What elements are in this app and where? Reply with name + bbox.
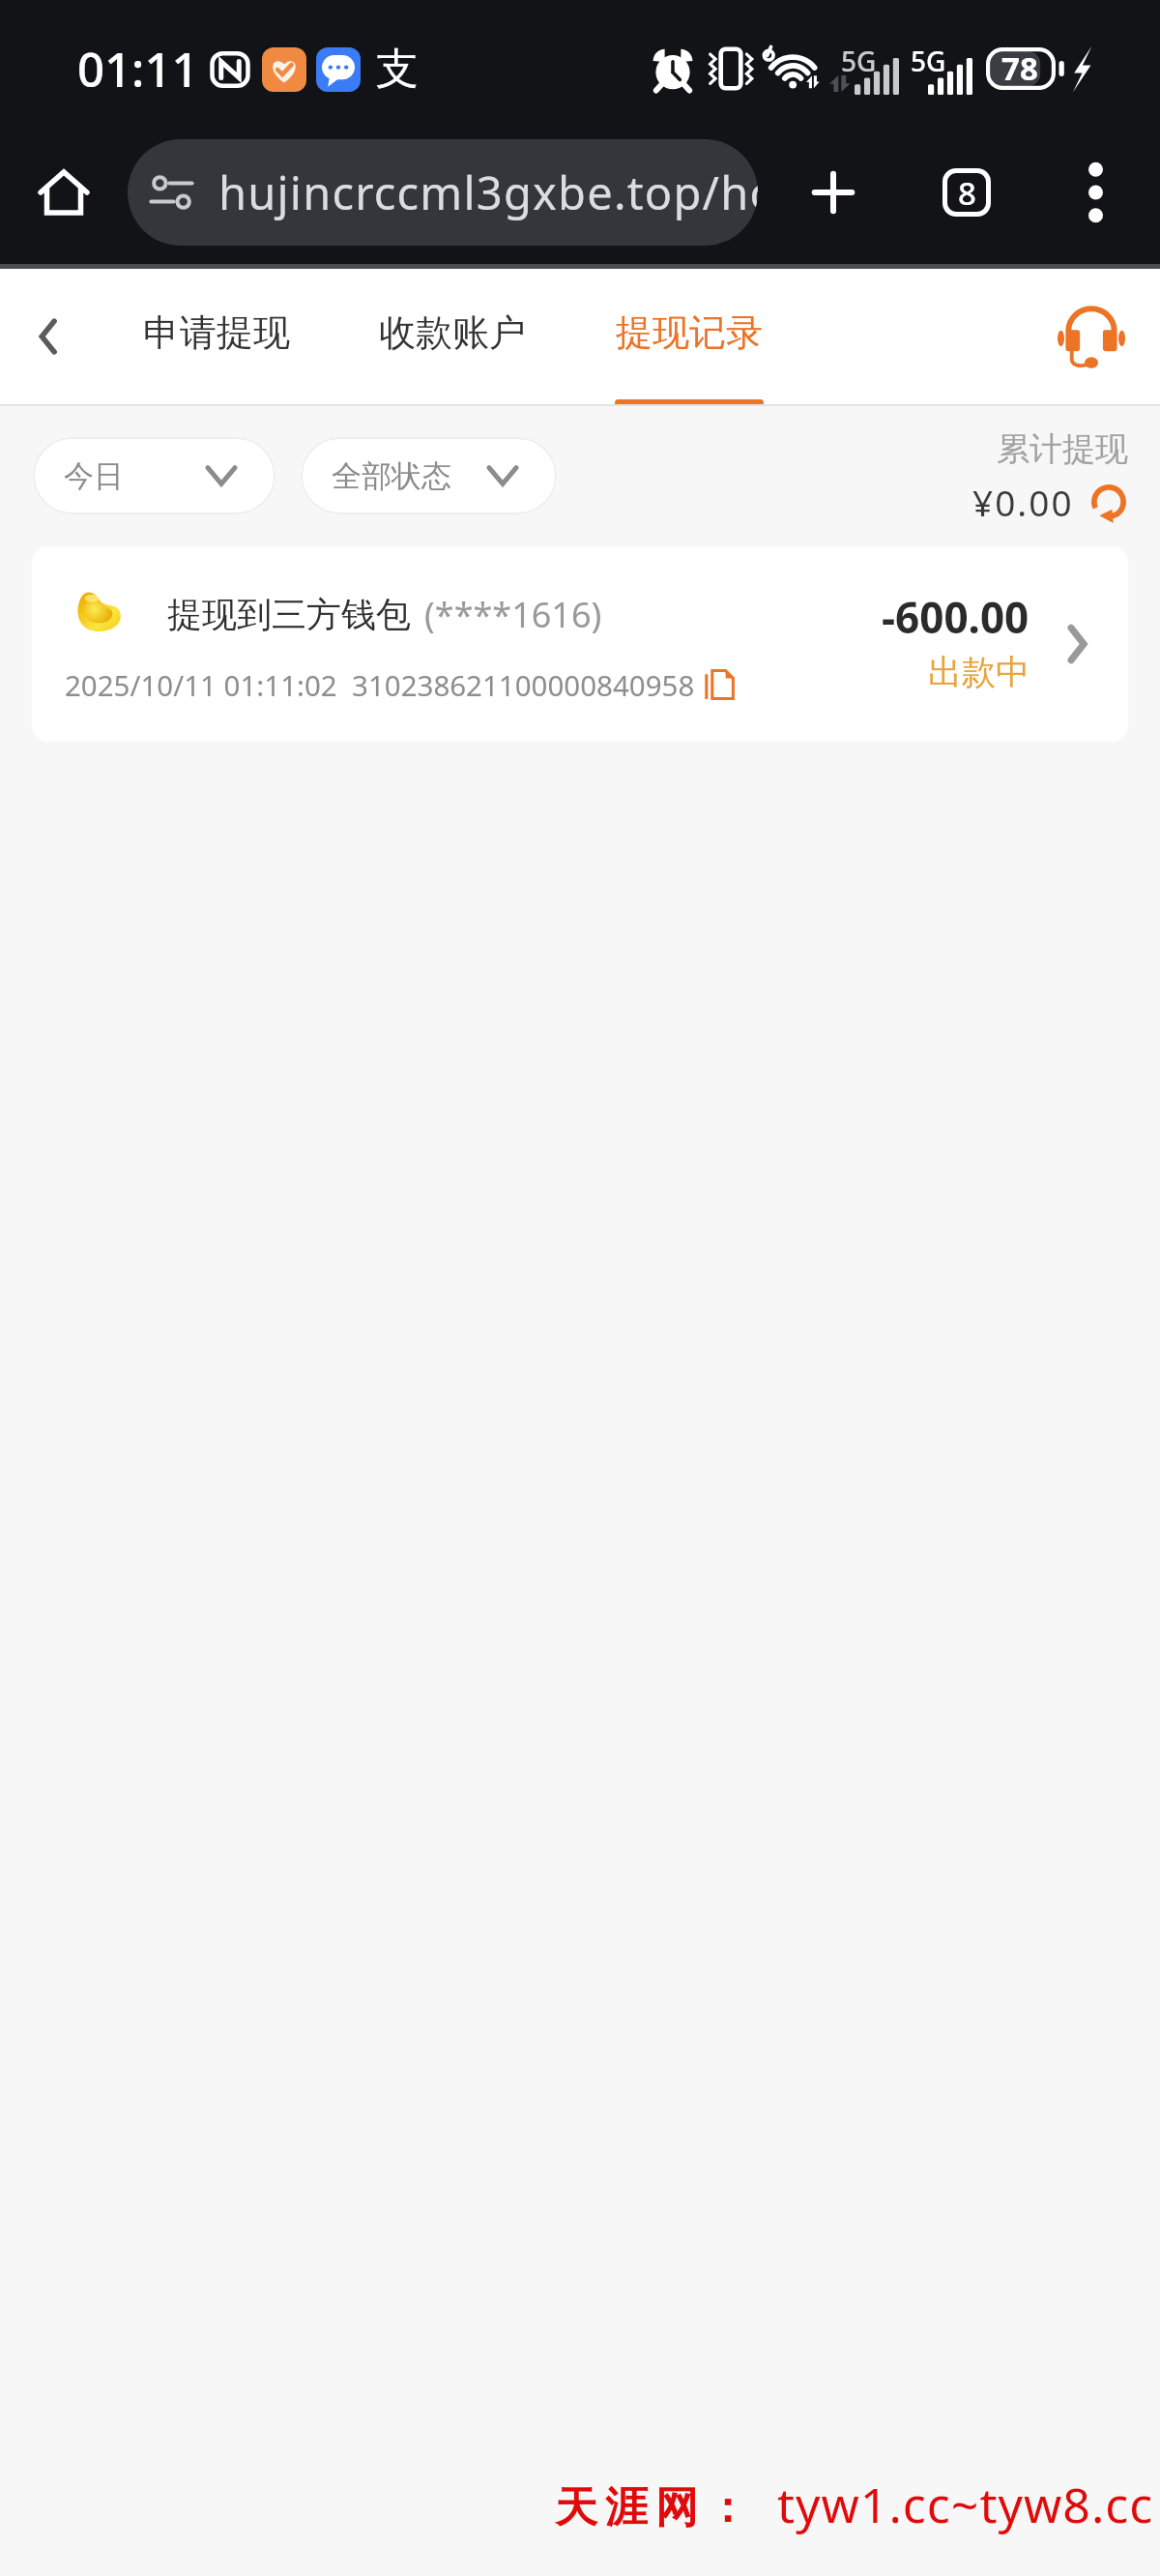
staticText: (****1616)	[424, 591, 602, 638]
staticText: -600.00	[882, 588, 1029, 646]
button[interactable]: Back	[10, 298, 87, 375]
button[interactable]: Copy order number	[703, 668, 736, 701]
staticText: 累计提现	[997, 428, 1128, 470]
button[interactable]: 全部状态	[301, 437, 557, 514]
button[interactable]: Refresh	[1089, 483, 1128, 521]
button[interactable]: More options	[1053, 150, 1138, 235]
button[interactable]: 收款账户	[334, 269, 570, 404]
staticText: hujincrccml3gxbe.top/home	[218, 161, 758, 223]
button[interactable]: 提现记录	[570, 269, 808, 404]
staticText: tyw1.cc~tyw8.cc	[777, 2472, 1154, 2537]
staticText: 2025/10/11 01:11:02 31023862110000084095…	[65, 665, 695, 704]
staticText: 收款账户	[379, 309, 526, 356]
staticText: 5G	[911, 43, 946, 79]
button[interactable]: 申请提现	[99, 269, 334, 404]
staticText: 申请提现	[143, 309, 290, 356]
staticText: 提现到三方钱包	[167, 593, 411, 636]
staticText: 今日	[64, 457, 124, 495]
staticText: 全部状态	[332, 457, 451, 495]
button[interactable]: 提现到三方钱包	[32, 546, 1128, 742]
staticText: 支	[376, 43, 419, 96]
button[interactable]: Home	[27, 156, 101, 229]
button[interactable]: Customer service	[1051, 296, 1132, 377]
staticText: 5G	[841, 43, 877, 79]
button[interactable]: 今日	[33, 437, 275, 514]
staticText: 01:11	[77, 37, 199, 102]
button[interactable]: hujincrccml3gxbe.top/home	[128, 139, 758, 246]
button[interactable]: New tab	[791, 150, 876, 235]
staticText: 8	[958, 171, 976, 215]
staticText: ¥0.00	[972, 478, 1074, 526]
staticText: 提现记录	[616, 309, 763, 356]
staticText: 天涯网：	[551, 2481, 752, 2534]
staticText: 出款中	[928, 651, 1029, 693]
staticText: 78	[1001, 46, 1038, 89]
button[interactable]: Tabs	[924, 150, 1009, 235]
